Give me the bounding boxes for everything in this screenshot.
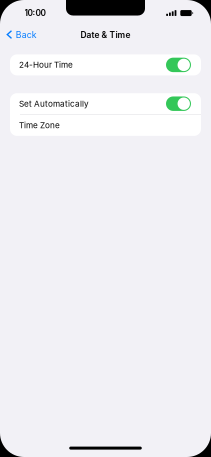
staticText: 10:00	[25, 8, 46, 18]
button[interactable]: 24-Hour Time	[10, 54, 201, 75]
staticText: Back	[16, 30, 37, 40]
staticText: Time Zone	[19, 120, 60, 130]
button[interactable]: Back	[0, 26, 42, 44]
staticText: 24-Hour Time	[19, 60, 73, 70]
staticText: Date & Time	[80, 30, 130, 40]
button[interactable]: Time Zone	[10, 115, 201, 136]
button[interactable]: Set Automatically	[10, 93, 201, 114]
staticText: Set Automatically	[19, 99, 89, 109]
